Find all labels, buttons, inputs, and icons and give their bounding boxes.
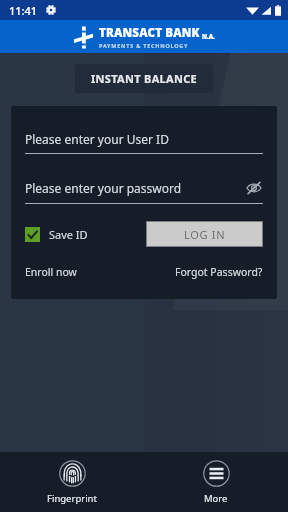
staticText: Save ID xyxy=(49,227,88,242)
button[interactable]: Enroll now xyxy=(25,265,77,279)
button[interactable]: More options xyxy=(144,452,288,512)
staticText: TRANSACT BANK xyxy=(99,25,200,41)
staticText: More xyxy=(204,492,228,505)
button[interactable]: Fingerprint login xyxy=(0,452,144,512)
button[interactable]: INSTANT BALANCE xyxy=(75,64,213,93)
staticText: Please enter your password xyxy=(25,180,182,196)
other: More options xyxy=(203,460,230,487)
button[interactable]: Save ID xyxy=(25,227,88,242)
staticText: INSTANT BALANCE xyxy=(91,71,197,86)
staticText: 11:41 xyxy=(9,3,38,18)
staticText: N.A. xyxy=(202,33,215,41)
button[interactable]: LOG IN xyxy=(146,221,263,247)
staticText: Enroll now xyxy=(25,265,77,279)
button[interactable]: Forgot Password? xyxy=(175,265,263,279)
staticText: Fingerprint xyxy=(47,492,97,505)
staticText: PAYMENTS & TECHNOLOGY xyxy=(99,42,189,49)
other: Fingerprint login xyxy=(59,460,86,487)
staticText: Forgot Password? xyxy=(175,265,263,279)
button[interactable]: Show password xyxy=(245,179,263,197)
staticText: LOG IN xyxy=(184,227,226,242)
staticText: Please enter your User ID xyxy=(25,131,169,147)
